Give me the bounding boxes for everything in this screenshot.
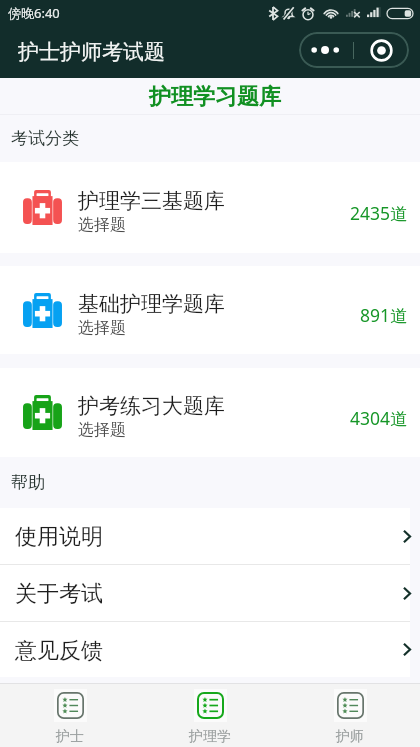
staticText: 护师 xyxy=(336,728,364,746)
button[interactable]: 意见反馈 xyxy=(0,622,420,677)
button[interactable]: 护师 xyxy=(280,684,420,747)
staticText: 护理学三基题库 xyxy=(78,188,225,214)
staticText: 护士护师考试题 xyxy=(18,39,165,65)
staticText: 4304道 xyxy=(350,406,408,430)
button[interactable]: Menu xyxy=(299,32,353,68)
staticText: 意见反馈 xyxy=(15,637,103,665)
staticText: 护理学习题库 xyxy=(149,83,281,111)
button[interactable]: 护理学三基题库 xyxy=(0,162,420,253)
staticText: 护理学 xyxy=(189,728,231,746)
staticText: 傍晚6:40 xyxy=(8,4,60,22)
button[interactable]: 护理学 xyxy=(140,684,280,747)
staticText: 护考练习大题库 xyxy=(78,393,225,419)
staticText: 选择题 xyxy=(78,318,126,338)
button[interactable]: 基础护理学题库 xyxy=(0,266,420,354)
staticText: 2435道 xyxy=(350,201,408,225)
staticText: 使用说明 xyxy=(15,523,103,551)
staticText: 关于考试 xyxy=(15,580,103,608)
staticText: 选择题 xyxy=(78,215,126,235)
staticText: 考试分类 xyxy=(11,128,79,149)
staticText: 帮助 xyxy=(11,472,45,493)
button[interactable]: 护考练习大题库 xyxy=(0,368,420,457)
button[interactable]: 使用说明 xyxy=(0,508,420,564)
staticText: 选择题 xyxy=(78,420,126,440)
button[interactable]: Close xyxy=(354,32,409,68)
button[interactable]: 关于考试 xyxy=(0,565,420,621)
staticText: 891道 xyxy=(360,303,408,327)
staticText: 护士 xyxy=(56,728,84,746)
staticText: 基础护理学题库 xyxy=(78,291,225,317)
button[interactable]: 护士 xyxy=(0,684,140,747)
